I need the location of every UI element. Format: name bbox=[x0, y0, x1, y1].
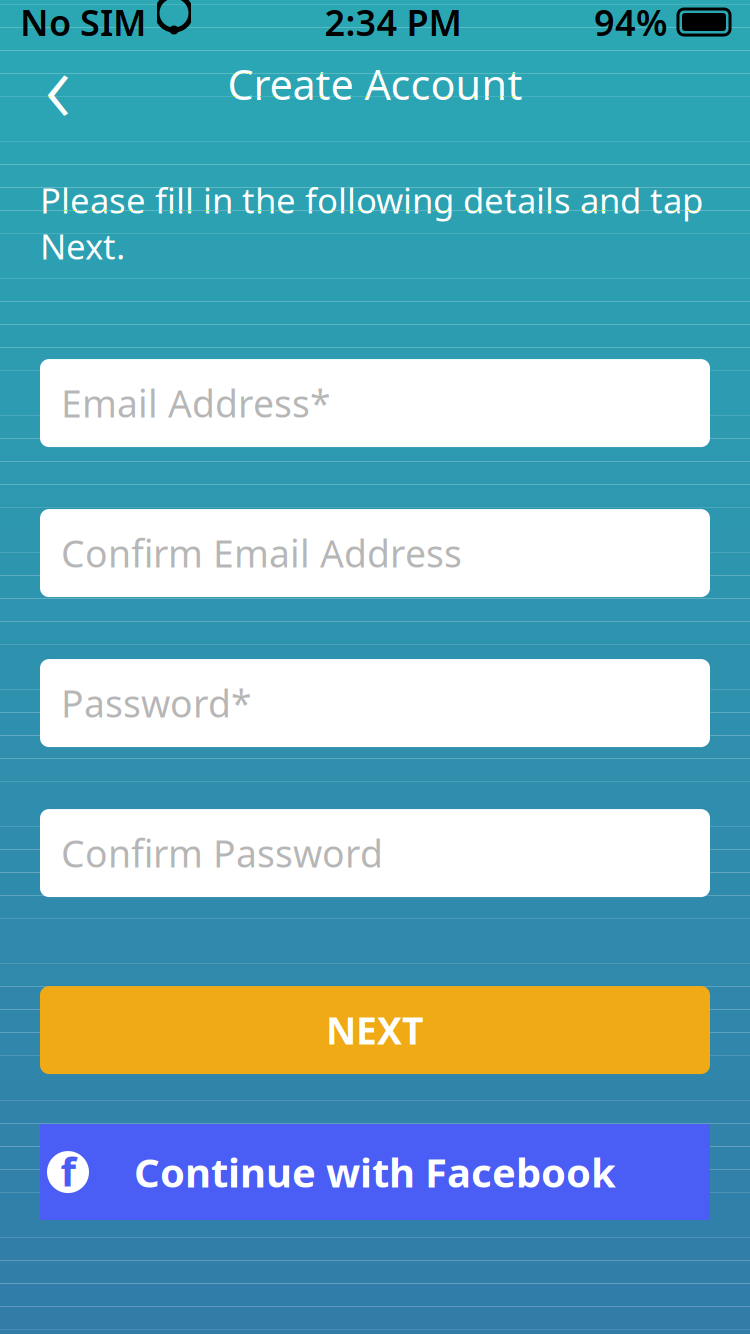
button[interactable]: Email Address* bbox=[40, 359, 710, 447]
staticText: Password* bbox=[61, 678, 252, 728]
staticText: 2:34 PM bbox=[324, 0, 461, 46]
button[interactable]: Back bbox=[20, 46, 96, 122]
staticText: ‹ bbox=[44, 17, 71, 151]
staticText: f bbox=[60, 1144, 75, 1198]
button[interactable]: Password* bbox=[40, 659, 710, 747]
button[interactable]: Continue with Facebook bbox=[40, 1124, 710, 1220]
staticText: Create Account bbox=[227, 57, 522, 111]
staticText: Continue with Facebook bbox=[134, 1145, 616, 1199]
staticText: Confirm Email Address bbox=[61, 528, 462, 578]
staticText: Confirm Password bbox=[61, 828, 383, 878]
staticText: No SIM bbox=[20, 0, 146, 46]
button[interactable]: Confirm Email Address bbox=[40, 509, 710, 597]
staticText: Please fill in the following details and… bbox=[40, 177, 703, 269]
staticText: 94% bbox=[594, 0, 668, 46]
button[interactable]: NEXT bbox=[40, 986, 710, 1074]
button[interactable]: Confirm Password bbox=[40, 809, 710, 897]
staticText: NEXT bbox=[326, 1005, 424, 1055]
staticText: Email Address* bbox=[61, 378, 331, 428]
